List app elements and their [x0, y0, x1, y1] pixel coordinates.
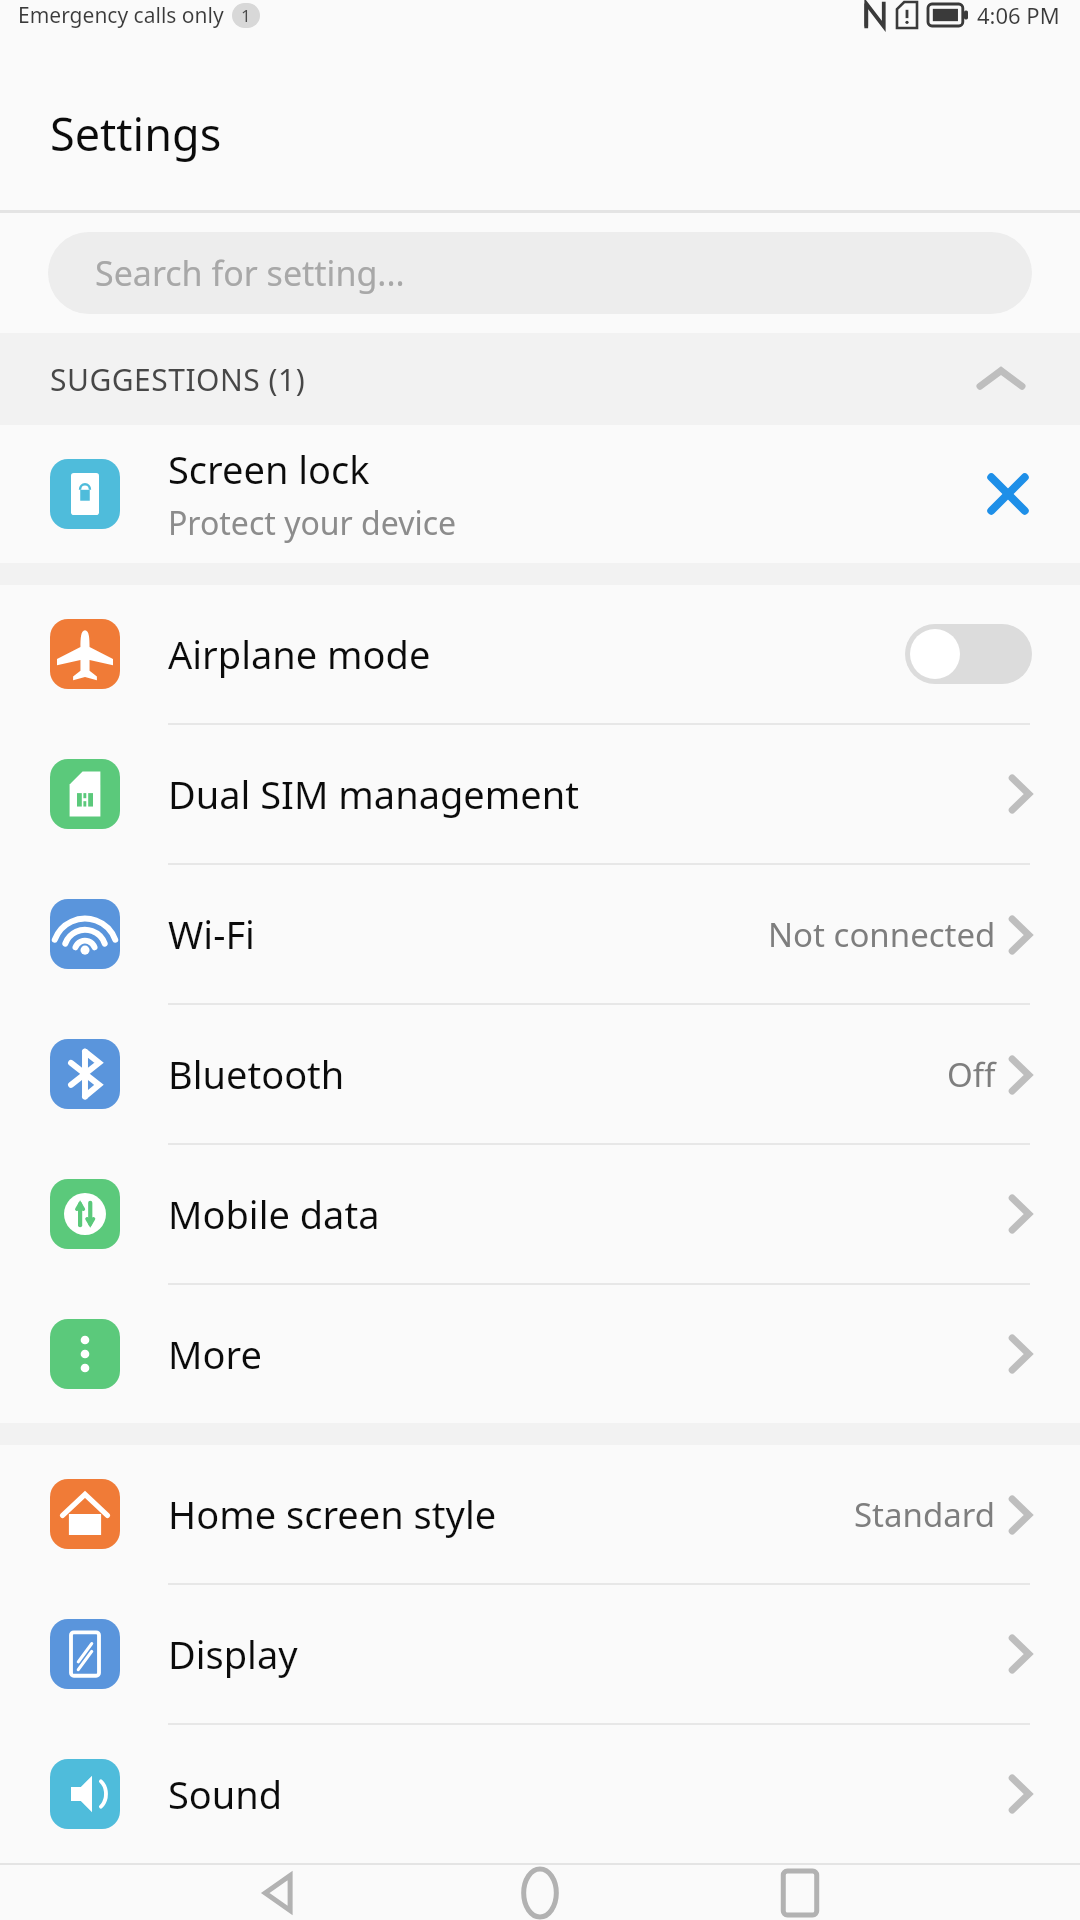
staticText: Settings: [50, 103, 222, 164]
button[interactable]: Mobile data: [0, 1145, 1080, 1283]
button[interactable]: Wi-Fi: [0, 865, 1080, 1003]
staticText: Search for setting...: [95, 250, 405, 296]
staticText: 4:06 PM: [977, 0, 1060, 30]
button[interactable]: More: [0, 1285, 1080, 1423]
button[interactable]: Airplane mode: [0, 585, 1080, 723]
button[interactable]: Screen lock: [0, 425, 1080, 563]
other: Collapse suggestions: [980, 366, 1022, 392]
staticText: Bluetooth: [168, 1048, 345, 1100]
staticText: Emergency calls only: [18, 1, 224, 30]
staticText: Protect your device: [168, 501, 457, 545]
staticText: Standard: [854, 1492, 996, 1537]
button[interactable]: Home: [410, 1865, 670, 1920]
button[interactable]: Back: [150, 1865, 410, 1920]
button[interactable]: SUGGESTIONS (1): [0, 333, 1080, 425]
staticText: Sound: [168, 1768, 283, 1820]
staticText: Screen lock: [168, 443, 370, 495]
staticText: Not connected: [768, 912, 996, 957]
staticText: Dual SIM management: [168, 768, 579, 820]
staticText: Off: [947, 1052, 996, 1097]
staticText: Mobile data: [168, 1188, 380, 1240]
staticText: Airplane mode: [168, 628, 431, 680]
other: Dismiss suggestion: [986, 472, 1030, 516]
staticText: Wi-Fi: [168, 908, 255, 960]
staticText: Display: [168, 1628, 298, 1680]
button[interactable]: Search for setting...: [48, 232, 1032, 314]
staticText: 1: [241, 4, 251, 27]
button[interactable]: Bluetooth: [0, 1005, 1080, 1143]
button[interactable]: Sound: [0, 1725, 1080, 1863]
other: Airplane mode off: [905, 624, 1032, 684]
button[interactable]: Dual SIM management: [0, 725, 1080, 863]
staticText: Home screen style: [168, 1488, 497, 1540]
staticText: More: [168, 1328, 262, 1380]
button[interactable]: Display: [0, 1585, 1080, 1723]
staticText: SUGGESTIONS (1): [50, 359, 306, 400]
button[interactable]: Home screen style: [0, 1445, 1080, 1583]
button[interactable]: Recent apps: [670, 1865, 930, 1920]
